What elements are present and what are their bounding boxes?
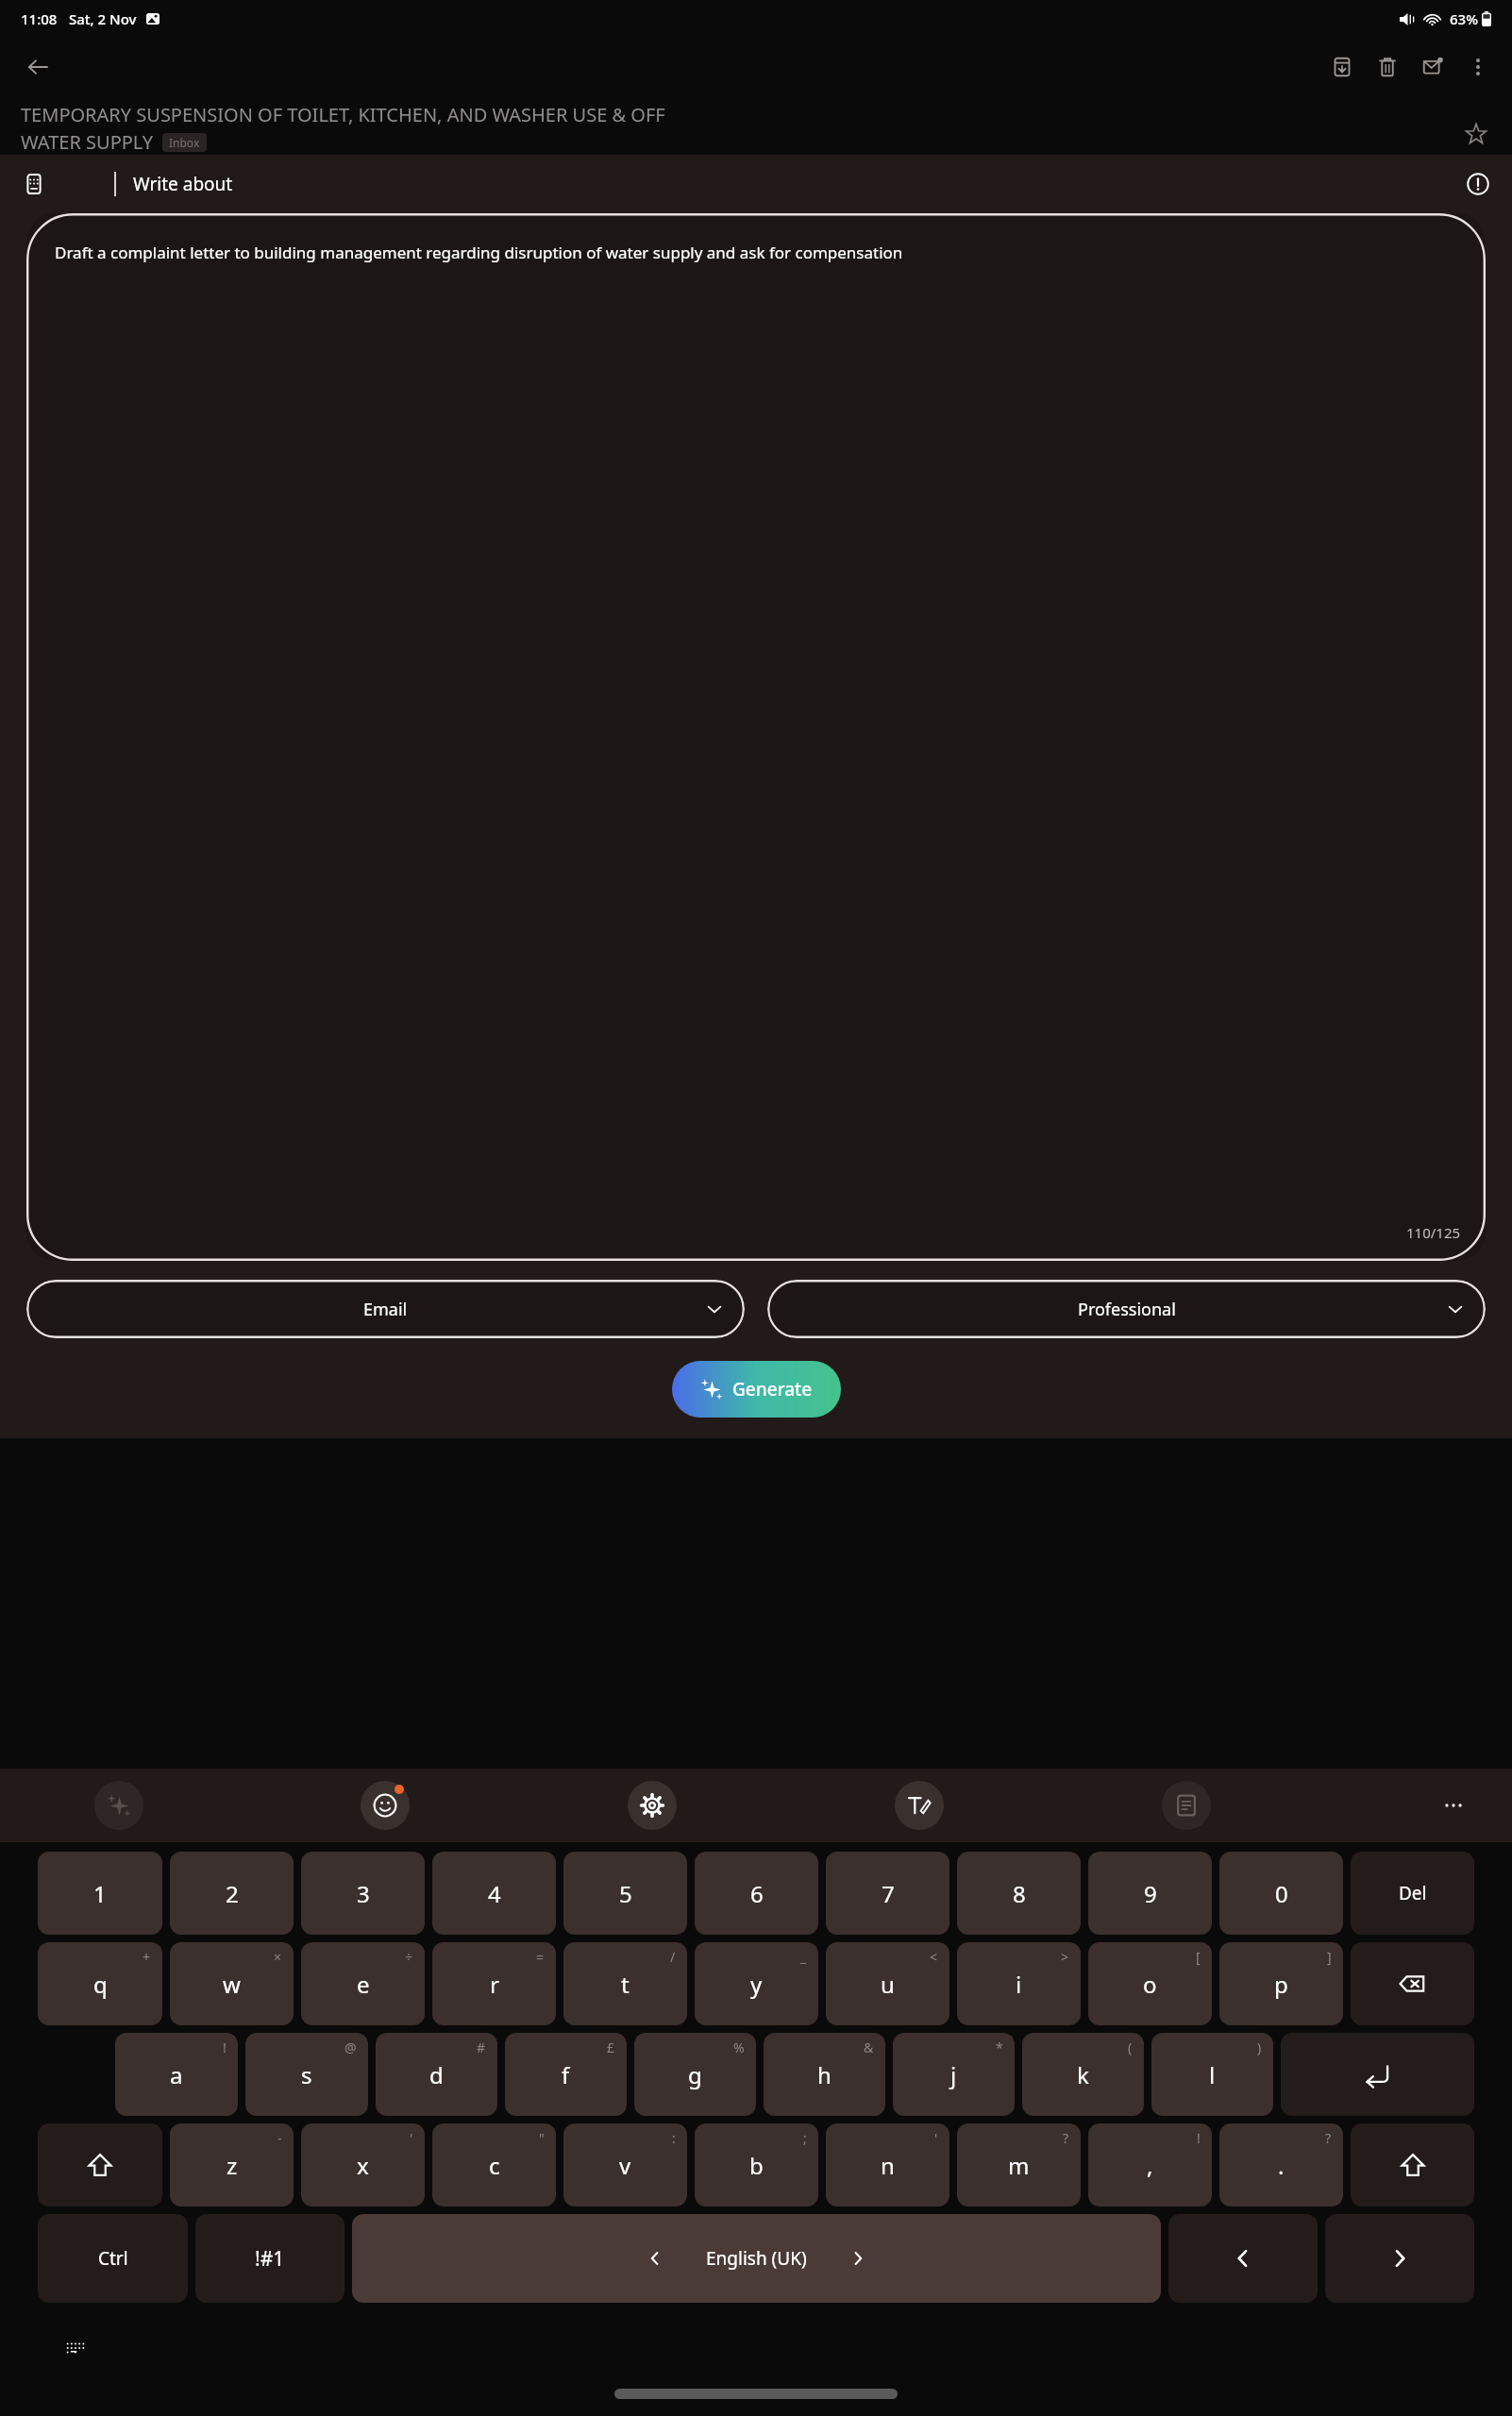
- staticText: /: [670, 1948, 676, 1966]
- button[interactable]: c: [432, 2123, 556, 2206]
- button[interactable]: Archive: [1319, 44, 1365, 90]
- staticText: ×: [274, 1948, 282, 1966]
- staticText: £: [607, 2038, 615, 2056]
- staticText: x: [357, 2150, 369, 2181]
- staticText: o: [1143, 1969, 1157, 2000]
- button[interactable]: Handwriting: [895, 1781, 944, 1830]
- button[interactable]: Hide keyboard: [57, 2329, 94, 2367]
- button[interactable]: s: [245, 2033, 368, 2116]
- button[interactable]: 4: [432, 1852, 556, 1935]
- button[interactable]: v: [563, 2123, 687, 2206]
- button[interactable]: Settings: [628, 1781, 677, 1830]
- staticText: j: [950, 2059, 957, 2090]
- staticText: _: [800, 1948, 807, 1966]
- button[interactable]: Delete: [1365, 44, 1410, 90]
- button[interactable]: u: [826, 1942, 949, 2025]
- button[interactable]: Email: [26, 1280, 745, 1338]
- staticText: Email: [363, 1298, 408, 1321]
- button[interactable]: back: [1351, 1942, 1474, 2025]
- staticText: 8: [1013, 1878, 1026, 1909]
- button[interactable]: n: [826, 2123, 949, 2206]
- button[interactable]: !#1: [195, 2214, 344, 2303]
- button[interactable]: Star: [1455, 113, 1497, 155]
- staticText: ,: [1147, 2150, 1153, 2181]
- staticText: u: [881, 1969, 895, 2000]
- staticText: y: [750, 1969, 763, 2000]
- staticText: r: [490, 1969, 499, 2000]
- button[interactable]: 9: [1088, 1852, 1212, 1935]
- button[interactable]: t: [563, 1942, 687, 2025]
- button[interactable]: 0: [1219, 1852, 1343, 1935]
- staticText: i: [1016, 1969, 1022, 2000]
- staticText: p: [1274, 1969, 1288, 2000]
- button[interactable]: r: [432, 1942, 556, 2025]
- button[interactable]: f: [505, 2033, 627, 2116]
- button[interactable]: Mark unread: [1410, 44, 1455, 90]
- button[interactable]: 3: [301, 1852, 425, 1935]
- button[interactable]: y: [695, 1942, 818, 2025]
- staticText: #: [477, 2038, 486, 2056]
- staticText: (: [1128, 2038, 1133, 2056]
- button[interactable]: l: [1151, 2033, 1273, 2116]
- button[interactable]: ,: [1088, 2123, 1212, 2206]
- button[interactable]: Cursor right: [1325, 2214, 1474, 2303]
- staticText: 7: [882, 1878, 895, 1909]
- staticText: n: [881, 2150, 895, 2181]
- button[interactable]: 5: [563, 1852, 687, 1935]
- staticText: k: [1077, 2059, 1089, 2090]
- button[interactable]: More options: [1455, 44, 1501, 90]
- button[interactable]: q: [38, 1942, 162, 2025]
- staticText: TEMPORARY SUSPENSION OF TOILET, KITCHEN,…: [21, 102, 665, 127]
- staticText: Professional: [1078, 1298, 1176, 1321]
- button[interactable]: 7: [826, 1852, 949, 1935]
- button[interactable]: Info: [1457, 163, 1499, 205]
- button[interactable]: o: [1088, 1942, 1212, 2025]
- staticText: ?: [1325, 2129, 1332, 2147]
- button[interactable]: 2: [170, 1852, 294, 1935]
- staticText: ": [539, 2129, 545, 2147]
- button[interactable]: Back: [15, 44, 60, 90]
- button[interactable]: g: [634, 2033, 756, 2116]
- button[interactable]: a: [115, 2033, 238, 2116]
- button[interactable]: Cursor left: [1168, 2214, 1318, 2303]
- button[interactable]: d: [376, 2033, 497, 2116]
- button[interactable]: w: [170, 1942, 294, 2025]
- button[interactable]: 8: [957, 1852, 1081, 1935]
- button[interactable]: Ctrl: [38, 2214, 188, 2303]
- staticText: !: [223, 2038, 227, 2056]
- button[interactable]: k: [1022, 2033, 1144, 2116]
- button[interactable]: .: [1219, 2123, 1343, 2206]
- button[interactable]: j: [893, 2033, 1015, 2116]
- button[interactable]: e: [301, 1942, 425, 2025]
- button[interactable]: Clipboard: [1162, 1781, 1211, 1830]
- staticText: 63%: [1450, 9, 1478, 28]
- staticText: Write about: [133, 172, 233, 196]
- staticText: z: [227, 2150, 238, 2181]
- staticText: 110/125: [1406, 1223, 1461, 1242]
- button[interactable]: Keyboard: [13, 163, 55, 205]
- button[interactable]: Professional: [767, 1280, 1486, 1338]
- button[interactable]: p: [1219, 1942, 1343, 2025]
- button[interactable]: Del: [1351, 1852, 1474, 1935]
- button[interactable]: x: [301, 2123, 425, 2206]
- button[interactable]: shift: [38, 2123, 162, 2206]
- staticText: t: [621, 1969, 630, 2000]
- button[interactable]: z: [170, 2123, 294, 2206]
- button[interactable]: b: [695, 2123, 818, 2206]
- button[interactable]: 6: [695, 1852, 818, 1935]
- staticText: e: [357, 1969, 370, 2000]
- button[interactable]: Draft a complaint letter to building man…: [26, 213, 1486, 1261]
- button[interactable]: 1: [38, 1852, 162, 1935]
- button[interactable]: m: [957, 2123, 1081, 2206]
- button[interactable]: AI suggestions: [94, 1781, 143, 1830]
- button[interactable]: enter: [1281, 2033, 1474, 2116]
- staticText: -: [277, 2129, 282, 2147]
- button[interactable]: Space, English (UK): [352, 2214, 1161, 2303]
- staticText: !#1: [255, 2245, 285, 2273]
- button[interactable]: shift: [1351, 2123, 1474, 2206]
- button[interactable]: Emoji: [361, 1781, 410, 1830]
- button[interactable]: h: [764, 2033, 885, 2116]
- button[interactable]: Generate: [672, 1361, 841, 1418]
- button[interactable]: More: [1429, 1781, 1478, 1830]
- button[interactable]: i: [957, 1942, 1081, 2025]
